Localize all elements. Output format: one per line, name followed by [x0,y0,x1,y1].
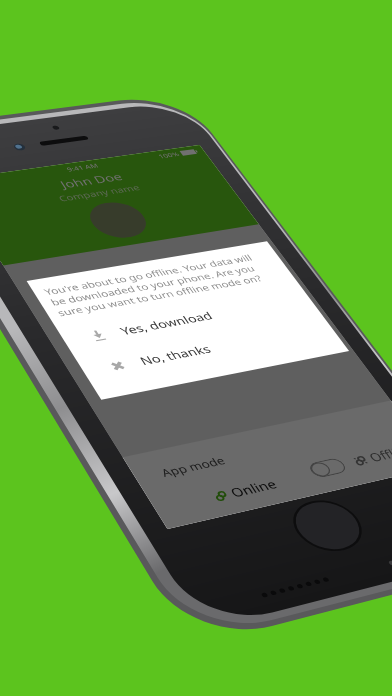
button[interactable]: No, thanks [17,367,369,425]
staticText: You're about to go offline. Your data wi… [31,233,353,297]
button[interactable]: Yes, download [17,309,369,367]
button[interactable] [212,617,258,643]
staticText: Yes, download [95,325,223,351]
staticText: Offline [296,617,357,643]
staticText: No, thanks [95,383,192,409]
